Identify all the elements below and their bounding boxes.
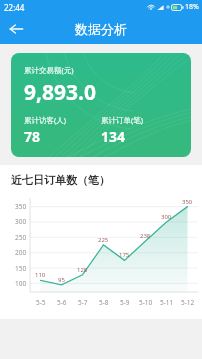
- staticText: 5-8: [99, 298, 109, 307]
- staticText: 100: [15, 279, 27, 288]
- staticText: 数据分析: [75, 21, 127, 37]
- staticText: 5-7: [78, 298, 88, 307]
- staticText: 5-9: [120, 298, 130, 307]
- staticText: 5-12: [181, 298, 195, 307]
- staticText: 5-5: [36, 298, 46, 307]
- staticText: 150: [15, 264, 27, 273]
- staticText: 128: [77, 266, 88, 274]
- staticText: 22:44: [4, 2, 25, 13]
- staticText: 累计订单(笔): [101, 115, 143, 125]
- staticText: 300: [161, 213, 172, 221]
- button[interactable]: Back: [0, 14, 32, 44]
- staticText: 累计交易额(元): [24, 65, 74, 75]
- staticText: 110: [35, 271, 46, 279]
- staticText: 300: [15, 217, 27, 226]
- staticText: 350: [182, 198, 193, 206]
- button[interactable]: 累计交易额(元): [11, 53, 191, 157]
- staticText: 200: [15, 248, 27, 257]
- staticText: 95: [58, 276, 65, 284]
- staticText: 18%: [185, 2, 199, 12]
- staticText: 238: [140, 232, 151, 240]
- staticText: 250: [15, 233, 27, 242]
- staticText: 78: [24, 127, 41, 146]
- staticText: 累计访客(人): [24, 115, 66, 125]
- staticText: 近七日订单数（笔）: [11, 173, 110, 187]
- staticText: 9,893.0: [24, 78, 96, 107]
- staticText: 225: [98, 236, 109, 244]
- staticText: 134: [101, 127, 126, 146]
- staticText: 350: [15, 202, 27, 211]
- staticText: 5-6: [57, 298, 67, 307]
- staticText: 5-10: [139, 298, 153, 307]
- staticText: 5-11: [160, 298, 174, 307]
- staticText: 175: [119, 251, 130, 259]
